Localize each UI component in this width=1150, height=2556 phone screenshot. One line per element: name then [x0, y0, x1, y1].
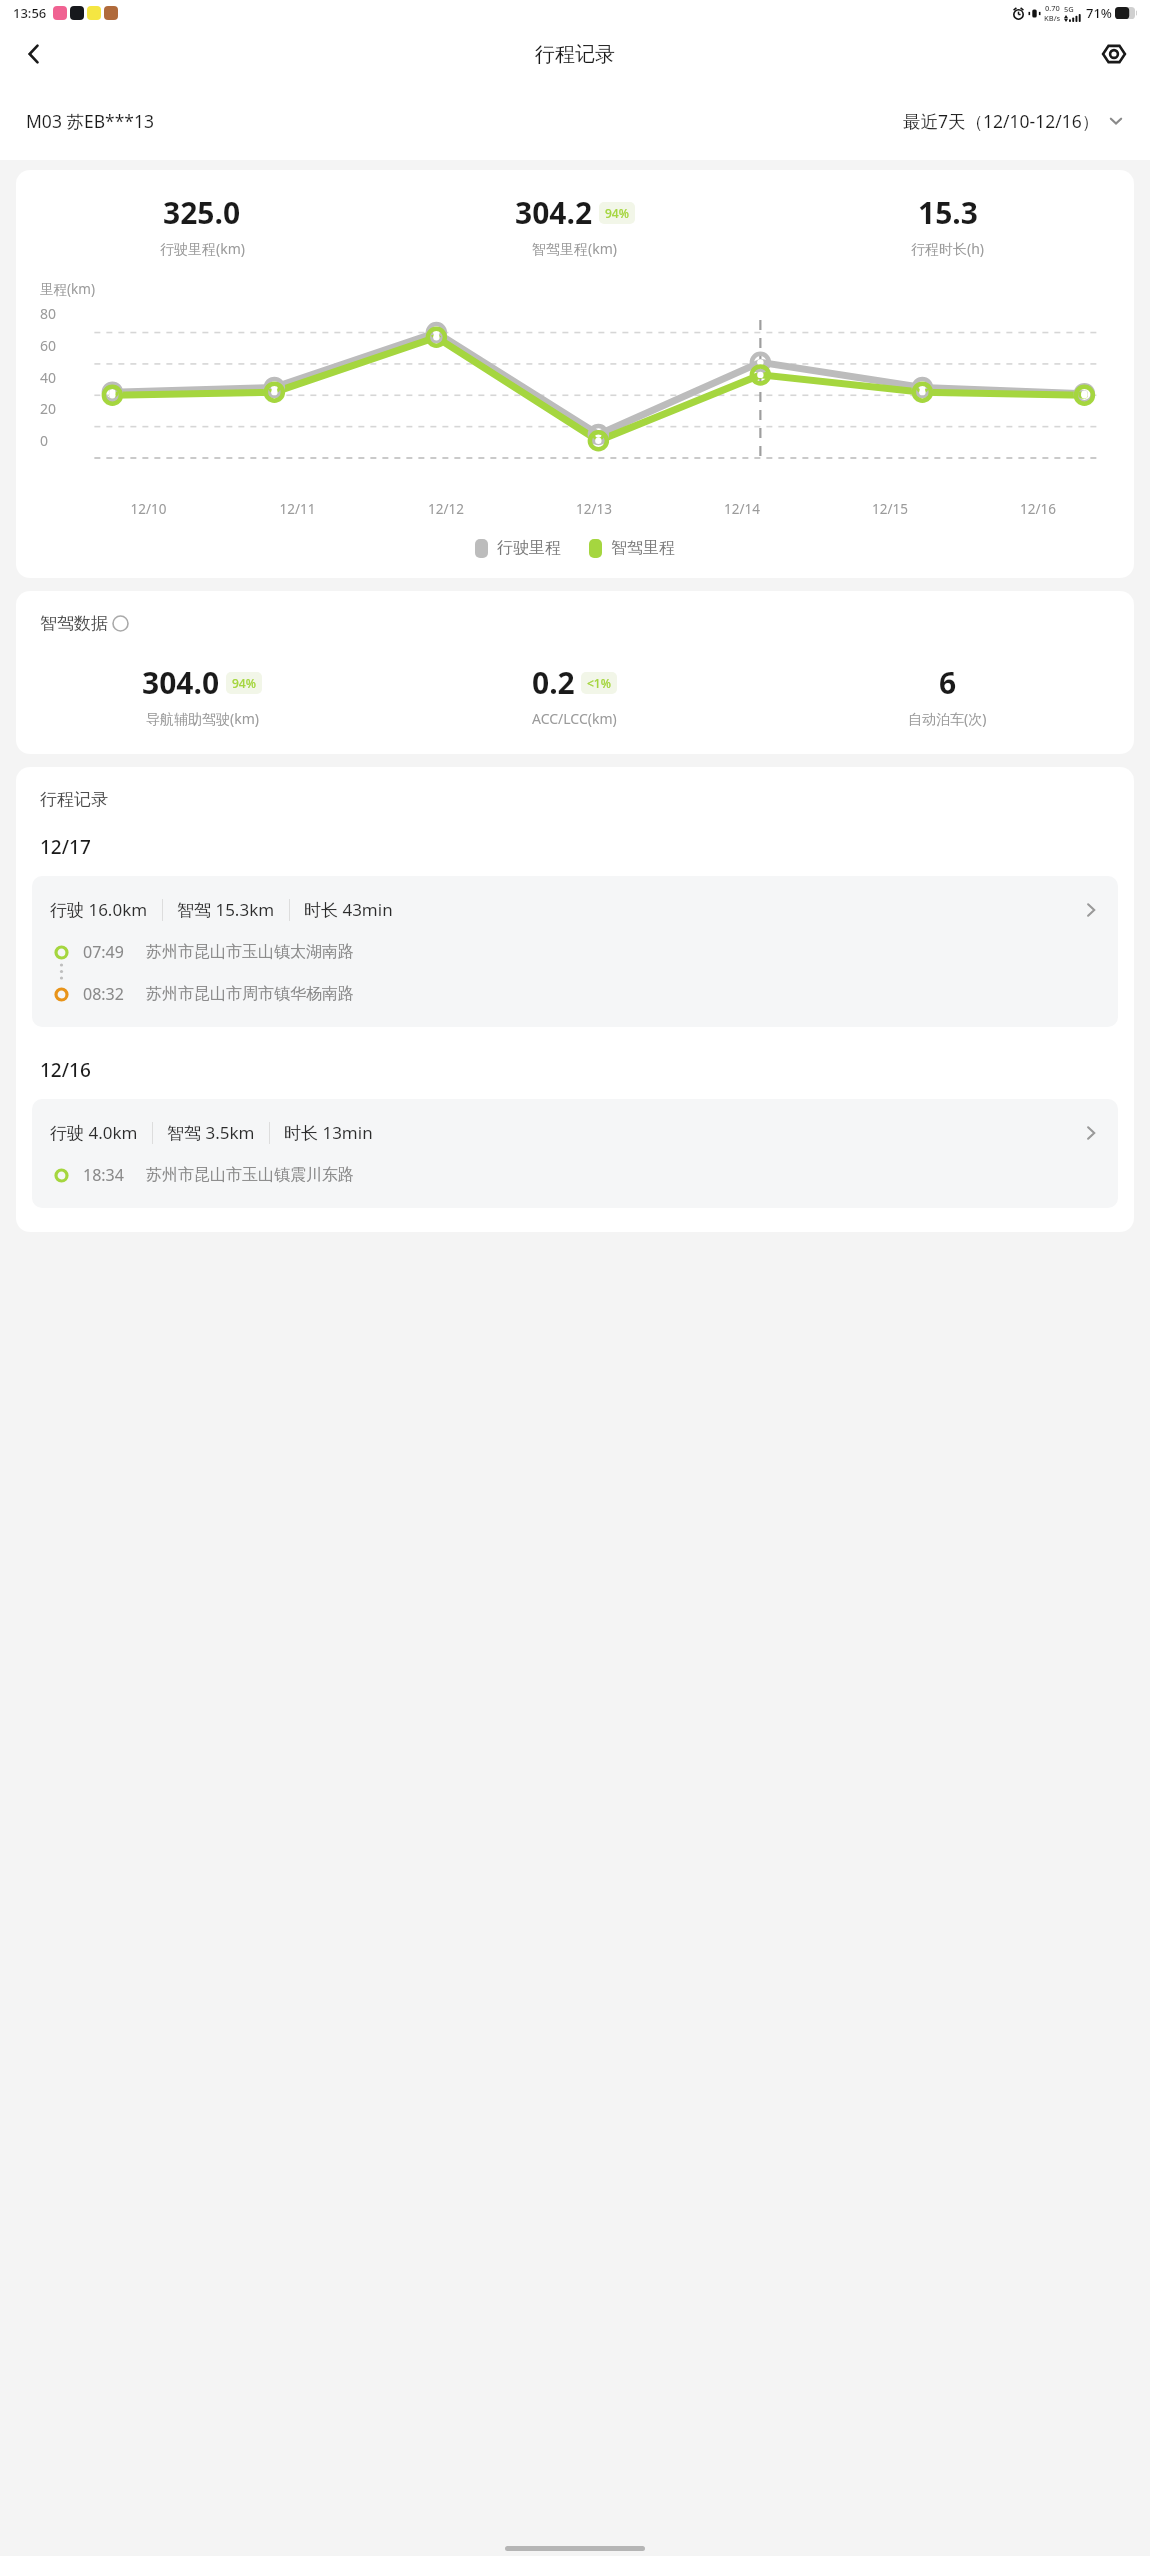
staticText: 智驾 15.3km — [177, 898, 275, 921]
button[interactable]: 行驶里程 — [475, 538, 561, 558]
staticText: 12/12 — [372, 500, 520, 518]
staticText: 0 — [40, 431, 49, 450]
staticText: 12/13 — [520, 500, 668, 518]
staticText: 苏州市昆山市玉山镇震川东路 — [146, 1165, 354, 1185]
staticText: 行程记录 — [535, 42, 615, 67]
staticText: 0.70 — [1045, 3, 1060, 13]
staticText: 智驾 3.5km — [167, 1121, 255, 1144]
staticText: 94% — [605, 205, 629, 221]
staticText: 12/16 — [964, 500, 1112, 518]
staticText: 12/10 — [74, 500, 223, 518]
staticText: 12/11 — [223, 500, 372, 518]
staticText: 行驶 16.0km — [50, 898, 148, 921]
button[interactable]: 15.3 — [761, 192, 1134, 258]
staticText: 智驾里程 — [611, 538, 675, 558]
staticText: 时长 13min — [284, 1121, 373, 1144]
staticText: 12/14 — [668, 500, 816, 518]
button[interactable]: 0.2 — [388, 662, 761, 728]
staticText: 行程记录 — [40, 789, 108, 810]
staticText: 12/16 — [40, 1057, 91, 1083]
staticText: 5G — [1064, 4, 1074, 14]
staticText: 12/17 — [40, 834, 91, 860]
staticText: 智驾数据 — [40, 613, 108, 634]
staticText: 07:49 — [83, 941, 124, 963]
staticText: <1% — [587, 675, 611, 691]
staticText: 80 — [40, 304, 57, 323]
staticText: 时长 43min — [304, 898, 393, 921]
staticText: 40 — [40, 368, 57, 387]
staticText: 325.0 — [163, 192, 241, 233]
button[interactable]: 6 — [761, 662, 1134, 728]
staticText: 18:34 — [83, 1164, 124, 1186]
staticText: 13:56 — [13, 4, 47, 22]
staticText: ACC/LCC(km) — [532, 709, 617, 728]
staticText: 60 — [40, 336, 57, 355]
staticText: 20 — [40, 399, 57, 418]
staticText: 304.2 — [515, 192, 593, 233]
staticText: 智驾里程(km) — [532, 239, 617, 258]
staticText: 304.0 — [142, 662, 220, 703]
button[interactable]: 325.0 — [16, 192, 388, 258]
staticText: 94% — [232, 675, 256, 691]
staticText: 苏州市昆山市玉山镇太湖南路 — [146, 942, 354, 962]
staticText: 08:32 — [83, 983, 124, 1005]
staticText: 12/15 — [816, 500, 964, 518]
staticText: M03 苏EB***13 — [26, 109, 154, 133]
button[interactable]: 304.0 — [16, 662, 388, 728]
staticText: 最近7天（12/10-12/16） — [903, 109, 1100, 133]
staticText: KB/s — [1044, 13, 1061, 23]
staticText: 行驶里程 — [497, 538, 561, 558]
staticText: 6 — [939, 662, 957, 703]
staticText: 里程(km) — [40, 280, 95, 298]
staticText: 行驶里程(km) — [160, 239, 245, 258]
button[interactable]: 304.2 — [388, 192, 761, 258]
button[interactable]: 智驾里程 — [589, 538, 675, 558]
staticText: 苏州市昆山市周市镇华杨南路 — [146, 984, 354, 1004]
button[interactable]: Settings — [1092, 32, 1136, 76]
button[interactable]: 行驶 16.0km — [32, 876, 1118, 1027]
staticText: 行程时长(h) — [911, 239, 985, 258]
staticText: 15.3 — [918, 192, 978, 233]
button[interactable]: 最近7天（12/10-12/16） — [899, 105, 1128, 137]
button[interactable]: 行驶 4.0km — [32, 1099, 1118, 1208]
staticText: 行驶 4.0km — [50, 1121, 138, 1144]
staticText: 0.2 — [532, 662, 575, 703]
button[interactable]: Back — [12, 32, 56, 76]
button[interactable]: M03 苏EB***13 — [22, 105, 158, 137]
staticText: 导航辅助驾驶(km) — [146, 709, 259, 728]
button[interactable]: 智驾数据 — [40, 613, 129, 634]
staticText: 71% — [1086, 4, 1112, 22]
staticText: 自动泊车(次) — [908, 709, 987, 728]
